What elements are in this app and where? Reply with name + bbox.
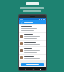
button[interactable]: Navigate up [20, 21, 23, 24]
button[interactable]: Recents [39, 68, 41, 70]
button[interactable] [19, 47, 46, 54]
button[interactable]: Back [24, 68, 26, 70]
button[interactable] [19, 33, 46, 40]
button[interactable]: Home [32, 68, 34, 70]
button[interactable] [19, 25, 46, 32]
button[interactable] [19, 41, 46, 46]
button[interactable] [19, 55, 46, 60]
button[interactable] [21, 63, 44, 66]
